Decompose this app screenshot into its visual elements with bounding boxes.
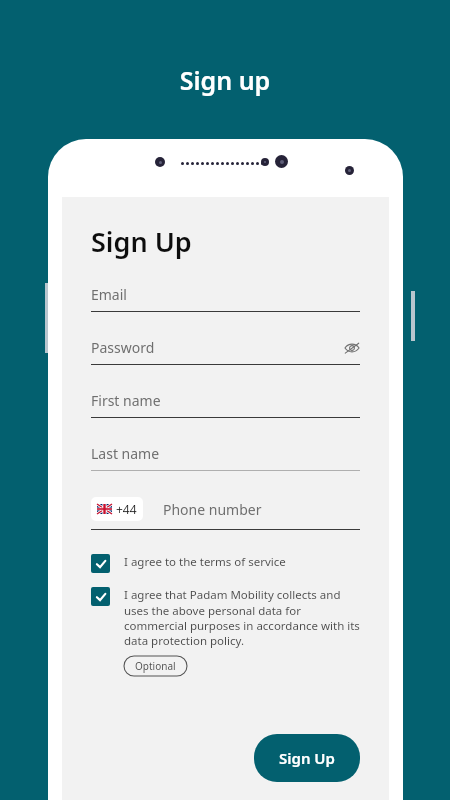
button[interactable]: Show password — [344, 340, 360, 356]
button[interactable]: +44 — [91, 497, 360, 530]
staticText: Sign up — [0, 63, 450, 97]
button[interactable]: Last name — [91, 444, 360, 471]
staticText: Last name — [91, 444, 360, 463]
staticText: Phone number — [163, 500, 262, 519]
staticText: +44 — [116, 501, 137, 517]
button[interactable]: Password — [91, 338, 360, 365]
button[interactable]: Email — [91, 285, 360, 312]
button[interactable]: Optional — [124, 656, 187, 676]
button[interactable]: I agree that Padam Mobility collects and… — [91, 587, 360, 648]
button[interactable]: +44 — [91, 497, 143, 521]
staticText: I agree to the terms of service — [124, 554, 286, 570]
button[interactable]: I agree to the terms of service — [91, 554, 360, 573]
button[interactable]: Sign Up — [254, 734, 360, 782]
staticText: Email — [91, 285, 360, 304]
staticText: Sign Up — [279, 748, 335, 768]
staticText: Password — [91, 338, 344, 357]
staticText: Optional — [135, 659, 176, 673]
staticText: First name — [91, 391, 360, 410]
staticText: Sign Up — [91, 223, 192, 260]
button[interactable]: First name — [91, 391, 360, 418]
staticText: I agree that Padam Mobility collects and… — [124, 587, 360, 648]
